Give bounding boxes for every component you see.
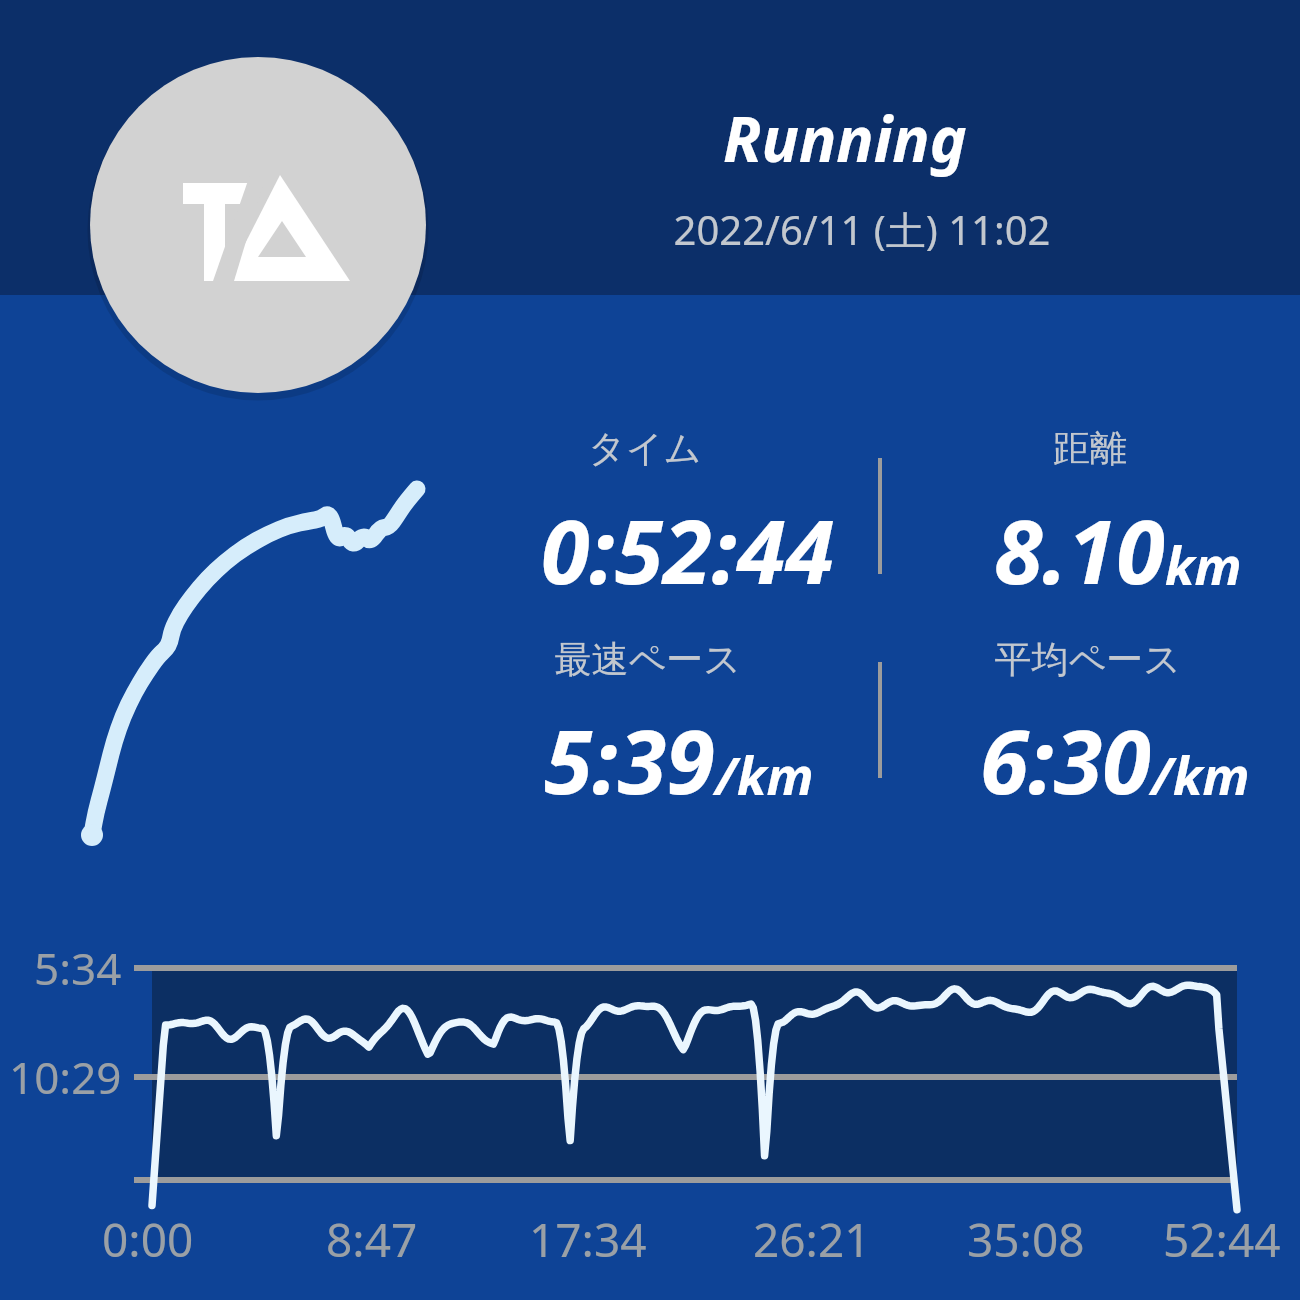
button[interactable]: Running workout summary [0,0,1300,1300]
